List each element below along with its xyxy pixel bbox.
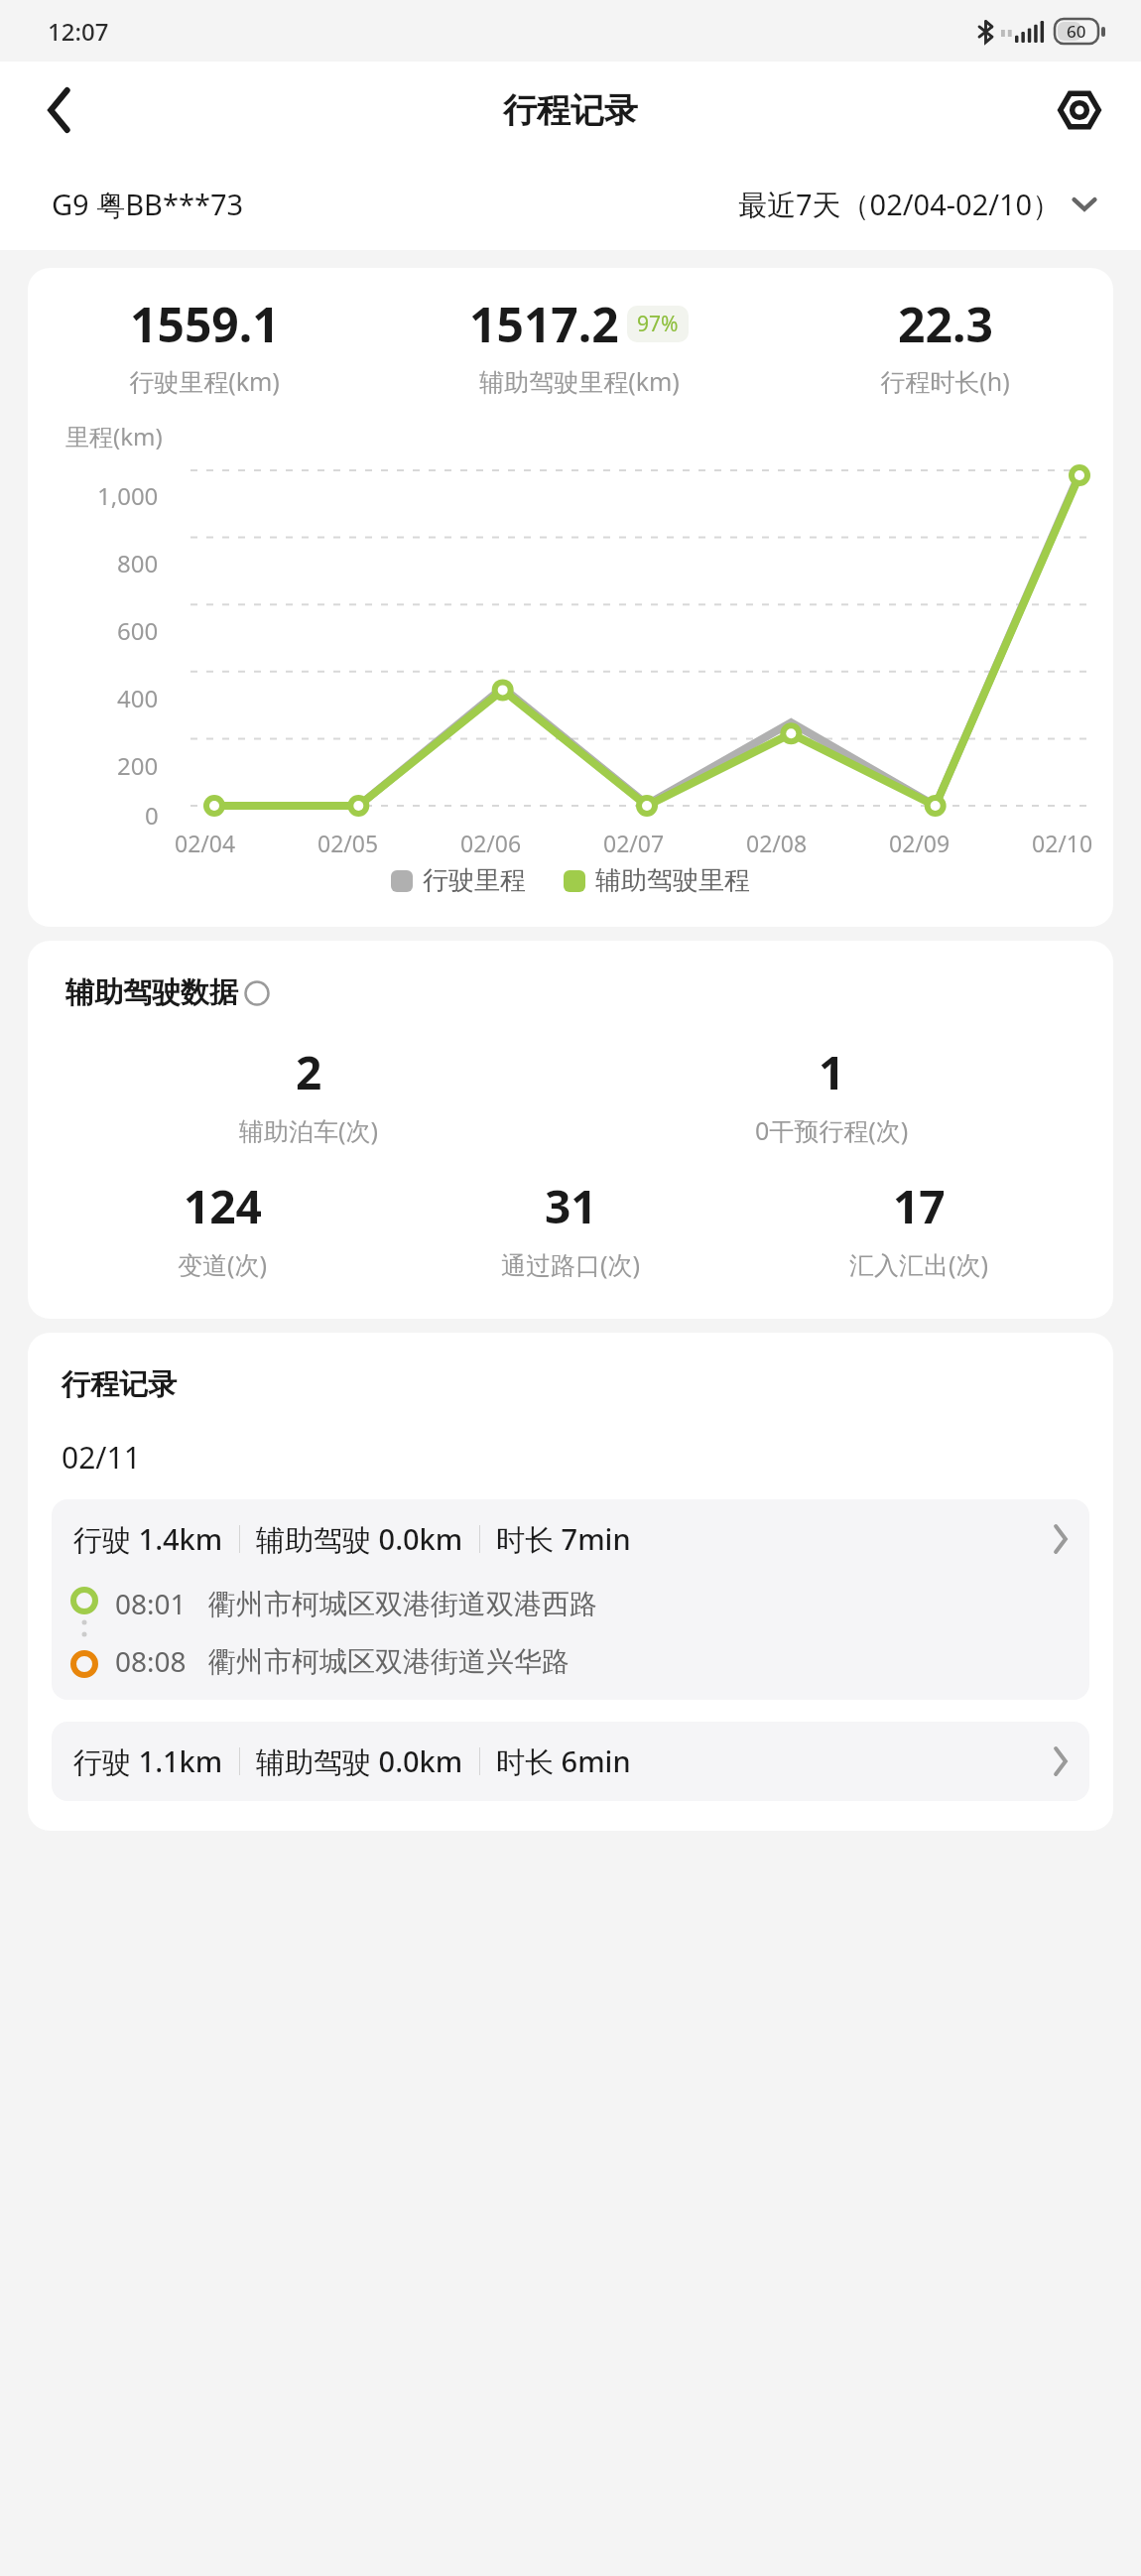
staticText: 31: [545, 1175, 597, 1237]
staticText: 里程(km): [65, 420, 163, 452]
button[interactable]: Settings: [1044, 74, 1115, 146]
staticText: 02/06: [460, 828, 522, 858]
staticText: 1559.1: [130, 292, 280, 356]
staticText: 02/07: [603, 828, 665, 858]
staticText: 衢州市柯城区双港街道双港西路: [208, 1587, 597, 1621]
staticText: 1: [819, 1041, 845, 1103]
staticText: 02/08: [746, 828, 808, 858]
staticText: 最近7天（02/04-02/10）: [738, 185, 1062, 224]
staticText: 衢州市柯城区双港街道兴华路: [208, 1644, 570, 1679]
staticText: 行程记录: [62, 1366, 177, 1403]
staticText: 行驶 1.1km: [73, 1741, 223, 1781]
staticText: 22.3: [898, 292, 993, 356]
staticText: 0干预行程(次): [755, 1113, 909, 1147]
staticText: 辅助驾驶 0.0km: [256, 1519, 463, 1559]
staticText: 08:01: [115, 1585, 187, 1622]
staticText: 辅助泊车(次): [239, 1113, 379, 1147]
staticText: 行驶里程: [423, 864, 526, 897]
button[interactable]: Back: [24, 74, 95, 146]
staticText: 400: [117, 682, 159, 714]
staticText: 辅助驾驶 0.0km: [256, 1741, 463, 1781]
staticText: 12:07: [48, 15, 109, 48]
staticText: 辅助驾驶里程(km): [479, 364, 680, 398]
button[interactable]: 最近7天（02/04-02/10）: [738, 185, 1097, 224]
staticText: 02/09: [889, 828, 951, 858]
staticText: 行程记录: [503, 89, 638, 132]
staticText: 变道(次): [178, 1247, 268, 1281]
staticText: 02/10: [1032, 828, 1093, 858]
staticText: 600: [117, 614, 159, 647]
staticText: 08:08: [115, 1642, 187, 1680]
staticText: 汇入汇出(次): [849, 1247, 989, 1281]
button[interactable]: 行驶 1.4km: [52, 1499, 1089, 1700]
staticText: 0: [145, 799, 159, 828]
staticText: 1,000: [97, 479, 159, 512]
staticText: 02/05: [317, 828, 379, 858]
staticText: 行驶里程(km): [129, 364, 280, 398]
staticText: 1517.2: [469, 292, 619, 356]
staticText: 时长 6min: [496, 1741, 631, 1781]
staticText: 行驶 1.4km: [73, 1519, 223, 1559]
button[interactable]: 行驶 1.1km: [52, 1722, 1089, 1801]
staticText: 200: [117, 749, 159, 782]
staticText: 124: [184, 1175, 262, 1237]
staticText: 800: [117, 547, 159, 580]
staticText: 02/04: [175, 828, 236, 858]
staticText: 02/11: [62, 1437, 141, 1478]
staticText: 行程时长(h): [880, 364, 1010, 398]
staticText: 97%: [637, 310, 679, 338]
staticText: 时长 7min: [496, 1519, 631, 1559]
staticText: 辅助驾驶里程: [595, 864, 750, 897]
button[interactable]: G9 粤BB***73: [52, 185, 244, 224]
staticText: 2: [296, 1041, 322, 1103]
staticText: 通过路口(次): [501, 1247, 641, 1281]
staticText: 辅助驾驶数据: [65, 974, 238, 1011]
staticText: 17: [893, 1175, 946, 1237]
staticText: 60: [1067, 20, 1086, 43]
